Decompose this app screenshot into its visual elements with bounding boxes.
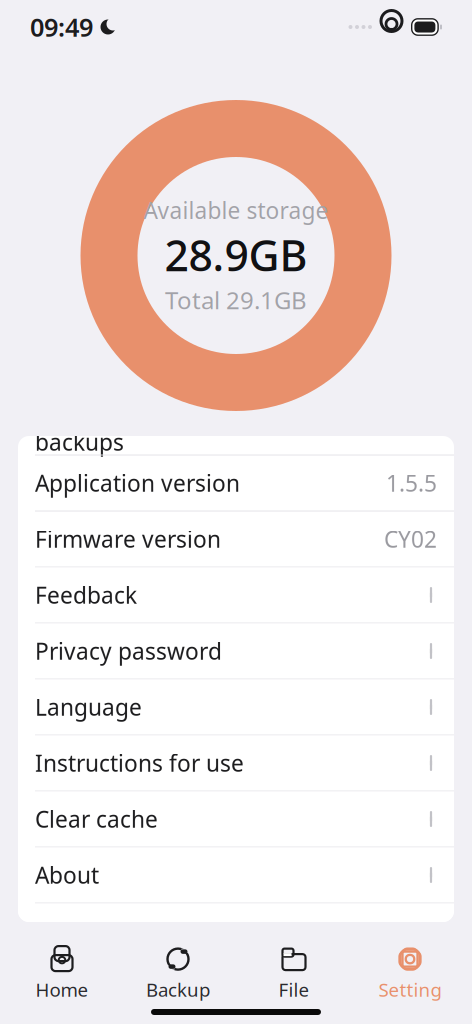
staticText: Instructions for use <box>35 748 244 778</box>
staticText: Setting <box>378 977 441 1002</box>
button[interactable]: Backup <box>120 939 236 1009</box>
staticText: 1.5.5 <box>386 468 437 498</box>
staticText: About <box>35 860 99 890</box>
button[interactable]: About <box>18 847 454 902</box>
staticText: Privacy password <box>35 636 222 666</box>
staticText: CY02 <box>384 524 437 554</box>
button[interactable]: Clear cache <box>18 791 454 846</box>
button[interactable]: Instructions for use <box>18 735 454 790</box>
staticText: Backup <box>146 977 210 1002</box>
staticText: 28.9GB <box>164 226 307 283</box>
staticText: Total 29.1GB <box>165 284 307 316</box>
button[interactable]: Language <box>18 679 454 734</box>
staticText: 365 <box>398 412 437 442</box>
staticText: 09:49 <box>30 10 93 44</box>
button[interactable]: Feedback <box>18 567 454 622</box>
staticText: Firmware version <box>35 524 221 554</box>
staticText: Clear cache <box>35 804 158 834</box>
staticText: Available storage <box>143 195 328 225</box>
staticText: Check for updates <box>35 916 229 946</box>
staticText: Home <box>35 977 88 1002</box>
button[interactable]: Setting <box>352 939 468 1009</box>
button[interactable]: Check for updates <box>18 903 454 958</box>
button[interactable]: Home <box>4 939 120 1009</box>
staticText: Language <box>35 692 142 722</box>
staticText: Feedback <box>35 580 137 610</box>
button[interactable]: File <box>236 939 352 1009</box>
staticText: File <box>278 977 309 1002</box>
staticText: Application version <box>35 468 240 498</box>
button[interactable]: Privacy password <box>18 623 454 678</box>
staticText: Number of u disk photo album backups <box>35 397 364 457</box>
